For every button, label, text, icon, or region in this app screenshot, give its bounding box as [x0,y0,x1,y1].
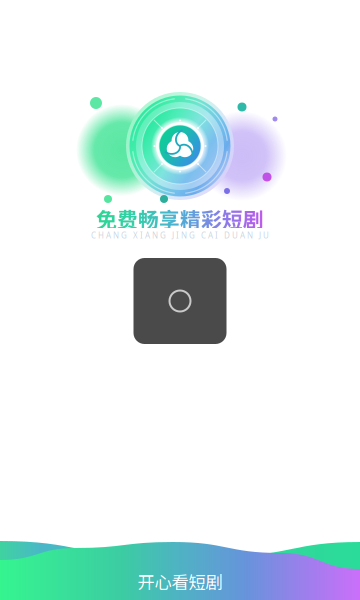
staticText: C H A N G X I A N G J I N G C A I D U A … [91,230,269,241]
button[interactable]: Loading [133,258,226,344]
staticText: 开心看短剧 [137,569,222,594]
